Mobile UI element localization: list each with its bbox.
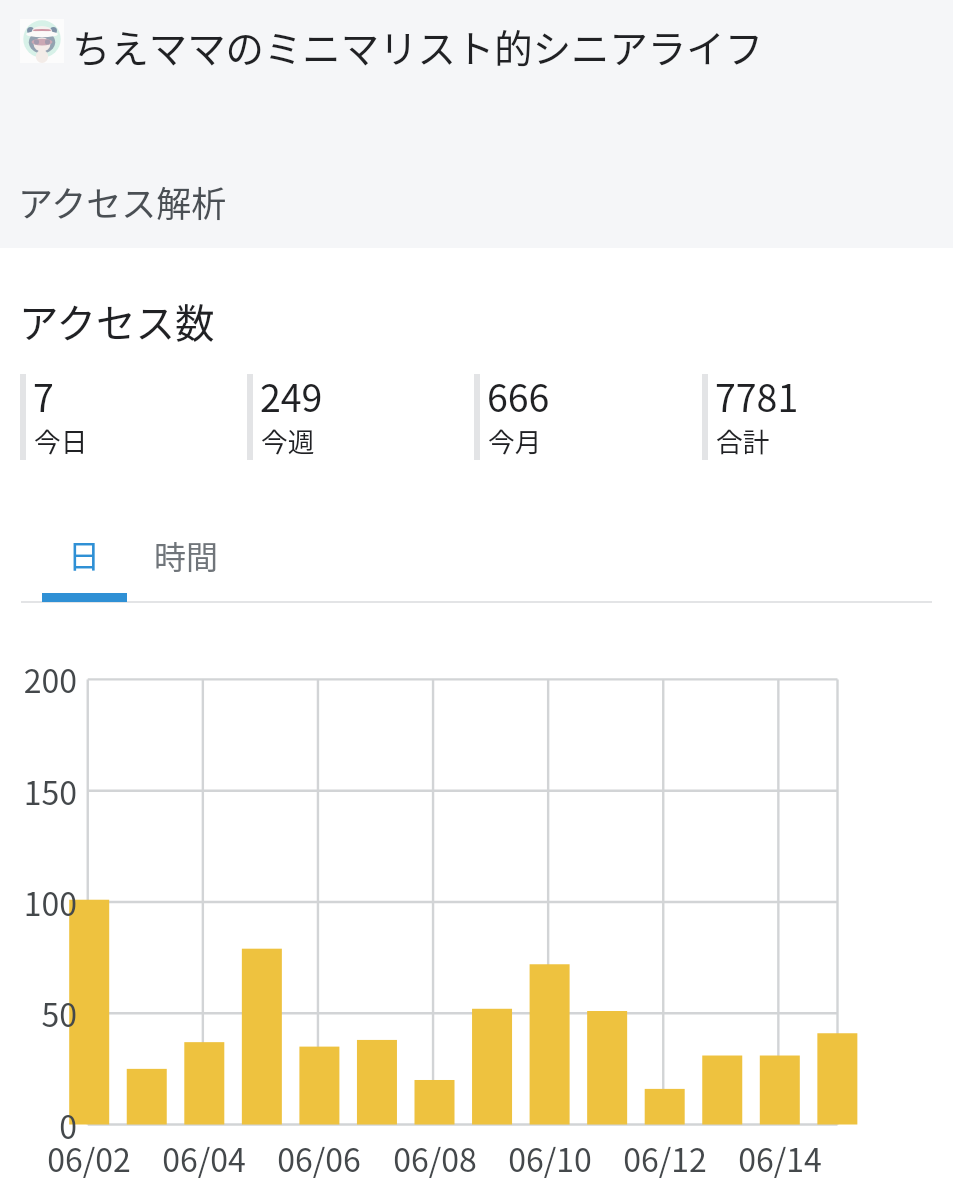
staticText: 合計: [716, 421, 770, 460]
staticText: 06/08: [375, 1135, 495, 1181]
button[interactable]: 日: [42, 512, 127, 602]
staticText: アクセス数: [19, 292, 215, 349]
staticText: 06/04: [144, 1135, 264, 1181]
staticText: アクセス解析: [18, 176, 227, 227]
staticText: 06/02: [29, 1135, 149, 1181]
button[interactable]: 249: [247, 374, 468, 460]
staticText: 06/14: [720, 1135, 840, 1181]
staticText: 0: [0, 1102, 77, 1148]
button[interactable]: 7781: [702, 374, 923, 460]
staticText: 666: [487, 368, 550, 422]
button[interactable]: Blog avatar: [0, 0, 953, 94]
staticText: 06/06: [259, 1135, 379, 1181]
staticText: 日: [68, 531, 101, 577]
staticText: 50: [0, 990, 77, 1036]
staticText: 今日: [34, 421, 88, 460]
staticText: 7: [33, 368, 54, 422]
staticText: 今週: [261, 421, 315, 460]
button[interactable]: 7: [20, 374, 241, 460]
staticText: 249: [260, 368, 323, 422]
staticText: ちえママのミニマリスト的シニアライフ: [72, 18, 764, 74]
other: Blog avatar: [20, 19, 64, 63]
button[interactable]: 666: [474, 374, 695, 460]
staticText: 7781: [715, 368, 799, 422]
staticText: 100: [0, 879, 77, 925]
staticText: 時間: [154, 532, 219, 578]
staticText: 150: [0, 768, 77, 814]
button[interactable]: 時間: [127, 512, 241, 602]
staticText: 200: [0, 656, 77, 702]
staticText: 今月: [488, 421, 542, 460]
staticText: 06/10: [490, 1135, 610, 1181]
staticText: 06/12: [605, 1135, 725, 1181]
